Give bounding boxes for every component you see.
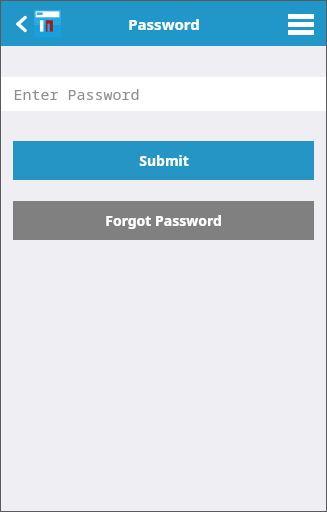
button[interactable]: Submit [13, 141, 314, 180]
staticText: Enter Password [13, 84, 140, 104]
staticText: Password [128, 14, 200, 34]
staticText: Submit [139, 151, 189, 170]
staticText: Forgot Password [105, 211, 222, 230]
button[interactable]: App icon [34, 10, 61, 37]
button[interactable]: Menu [284, 7, 318, 41]
button[interactable]: Back [7, 9, 37, 39]
button[interactable]: Enter Password [1, 77, 326, 111]
button[interactable]: Forgot Password [13, 201, 314, 240]
